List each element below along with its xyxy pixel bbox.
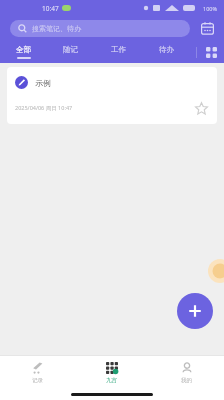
button[interactable]: Grid view	[203, 44, 219, 60]
button[interactable]: 九宫	[74, 356, 149, 389]
button[interactable]: 搜索笔记、待办	[10, 20, 190, 37]
button[interactable]: Favorite	[193, 100, 209, 116]
staticText: 随记	[63, 45, 78, 54]
button[interactable]: New note	[177, 293, 213, 329]
staticText: 九宫	[106, 377, 117, 384]
staticText: 搜索笔记、待办	[32, 24, 81, 33]
staticText: 记录	[32, 377, 43, 384]
staticText: 2025/04/06 周日 10:47	[15, 104, 73, 112]
staticText: 工作	[111, 45, 126, 54]
staticText: 待办	[159, 45, 174, 54]
staticText: 全部	[16, 45, 31, 54]
staticText: 示例	[35, 78, 51, 88]
button[interactable]: 工作	[94, 40, 142, 63]
button[interactable]: 示例	[7, 67, 217, 124]
button[interactable]: 随记	[47, 40, 94, 63]
button[interactable]: 记录	[0, 356, 74, 389]
button[interactable]: Calendar	[198, 19, 216, 37]
staticText: 100%	[203, 5, 218, 12]
staticText: 我的	[181, 377, 192, 384]
button[interactable]: 全部	[0, 40, 47, 63]
button[interactable]: 待办	[142, 40, 190, 63]
staticText: 10:47	[42, 4, 59, 13]
button[interactable]: 我的	[149, 356, 224, 389]
